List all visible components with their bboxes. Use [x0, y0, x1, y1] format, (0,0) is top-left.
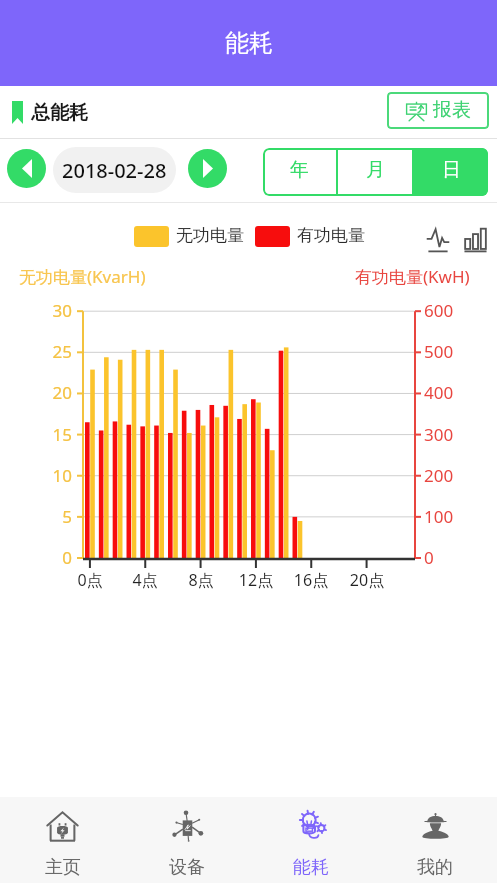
button[interactable]: 我的 — [373, 797, 497, 883]
staticText: 报表 — [433, 98, 471, 122]
staticText: 年 — [290, 158, 309, 182]
staticText: 600 — [424, 299, 454, 322]
staticText: 20 — [0, 381, 72, 404]
staticText: 能耗 — [225, 28, 273, 58]
staticText: 15 — [0, 423, 72, 446]
button[interactable]: 设备 — [125, 797, 249, 883]
button[interactable]: 年 — [263, 148, 336, 196]
button[interactable]: 报表 — [387, 92, 489, 129]
staticText: 有功电量(KwH) — [355, 265, 470, 288]
staticText: 500 — [424, 340, 454, 363]
staticText: 4点 — [125, 569, 165, 591]
button[interactable]: 能耗 — [249, 797, 373, 883]
staticText: 无功电量 — [176, 225, 244, 246]
staticText: 2018-02-28 — [62, 157, 167, 184]
staticText: 200 — [424, 464, 454, 487]
staticText: 我的 — [417, 856, 453, 879]
staticText: 有功电量 — [297, 225, 365, 246]
button[interactable]: 月 — [338, 148, 412, 196]
staticText: 100 — [424, 505, 454, 528]
button[interactable]: Line chart — [426, 226, 450, 253]
staticText: 300 — [424, 423, 454, 446]
staticText: 16点 — [291, 569, 331, 591]
staticText: 月 — [366, 158, 385, 182]
staticText: 能耗 — [293, 856, 329, 879]
staticText: 主页 — [45, 856, 81, 879]
staticText: 总能耗 — [31, 101, 88, 125]
staticText: 0 — [0, 546, 72, 569]
staticText: 25 — [0, 340, 72, 363]
staticText: 5 — [0, 505, 72, 528]
button[interactable]: 2018-02-28 — [53, 147, 176, 193]
staticText: 30 — [0, 299, 72, 322]
button[interactable]: Bar chart — [464, 226, 487, 253]
staticText: 设备 — [169, 856, 205, 879]
button[interactable]: 日 — [414, 148, 488, 196]
staticText: 无功电量(KvarH) — [19, 265, 146, 288]
staticText: 20点 — [347, 569, 387, 591]
staticText: 日 — [442, 158, 461, 182]
button[interactable]: Previous day — [7, 149, 46, 188]
staticText: 12点 — [236, 569, 276, 591]
button[interactable]: Next day — [188, 149, 227, 188]
staticText: 0点 — [70, 569, 110, 591]
staticText: 400 — [424, 381, 454, 404]
staticText: 10 — [0, 464, 72, 487]
staticText: 0 — [424, 546, 434, 569]
button[interactable]: 主页 — [0, 797, 125, 883]
staticText: 8点 — [181, 569, 221, 591]
